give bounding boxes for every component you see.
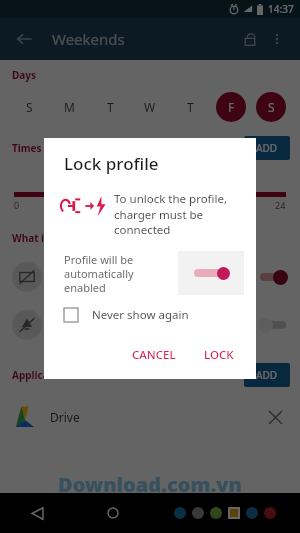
button[interactable]: Remove Drive — [262, 404, 288, 430]
button[interactable]: ADD — [244, 136, 290, 160]
button[interactable]: T — [175, 92, 205, 122]
staticText: CANCEL — [132, 347, 176, 363]
button[interactable]: W — [135, 92, 165, 122]
button[interactable]: T — [95, 92, 125, 122]
staticText: Times — [12, 141, 42, 155]
button[interactable]: Profile will be automatically enabled — [64, 251, 244, 295]
button[interactable]: F — [216, 92, 246, 122]
button[interactable]: More options — [264, 26, 290, 52]
staticText: M — [64, 99, 75, 115]
staticText: ADD — [256, 368, 278, 382]
staticText: Lock profile — [64, 152, 159, 175]
staticText: What is — [12, 231, 50, 245]
staticText: Days — [12, 68, 37, 82]
staticText: 24 — [275, 199, 286, 211]
button[interactable]: Never show again — [64, 307, 256, 323]
button[interactable]: Drive — [0, 399, 300, 435]
button[interactable]: ADD — [244, 363, 290, 387]
button[interactable]: S — [14, 92, 44, 122]
staticText: 14:37 — [268, 2, 294, 16]
button[interactable]: Home — [75, 493, 150, 533]
button[interactable]: Recent apps — [150, 493, 300, 533]
button[interactable]: M — [54, 92, 84, 122]
button[interactable]: LOCK — [194, 341, 244, 369]
staticText: Never show again — [92, 307, 189, 323]
staticText: ADD — [256, 141, 278, 155]
button[interactable]: S — [256, 92, 286, 122]
button[interactable]: Lock — [236, 25, 264, 53]
staticText: Profile will be automatically enabled — [64, 252, 164, 295]
staticText: Download.com.vn — [58, 471, 242, 493]
staticText: Drive — [50, 409, 80, 425]
staticText: App notification — [56, 317, 146, 333]
staticText: T — [107, 99, 114, 115]
button[interactable]: Back — [10, 25, 38, 53]
staticText: S — [26, 99, 33, 115]
staticText: Weekends — [52, 29, 125, 49]
staticText: Applications — [12, 368, 74, 382]
staticText: LOCK — [204, 347, 234, 363]
staticText: W — [144, 99, 156, 115]
button[interactable]: CANCEL — [122, 341, 186, 369]
button[interactable] — [0, 253, 300, 301]
staticText: S — [268, 99, 275, 115]
staticText: To unlock the profile, charger must be c… — [114, 191, 240, 237]
button[interactable]: Back — [0, 493, 75, 533]
button[interactable]: App notification — [0, 301, 300, 349]
staticText: T — [187, 99, 194, 115]
staticText: F — [228, 99, 235, 115]
staticText: 0 — [14, 199, 20, 211]
